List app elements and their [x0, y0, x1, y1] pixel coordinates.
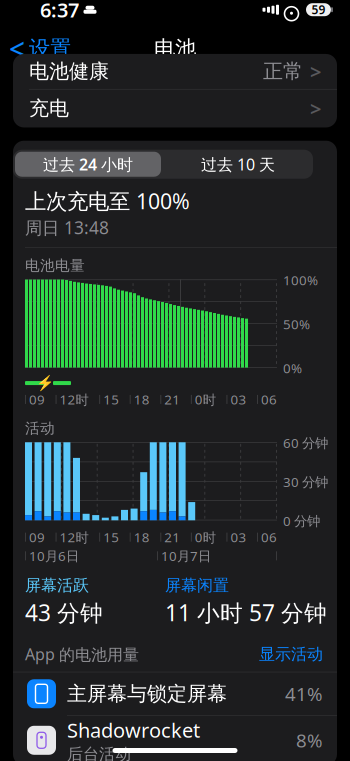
staticText: 18 [134, 391, 150, 408]
staticText: 主屏幕与锁定屏幕 [67, 681, 227, 706]
staticText: 21 [164, 391, 180, 408]
staticText: 15 [103, 391, 119, 408]
staticText: 0时 [195, 391, 216, 408]
button[interactable]: 过去 24 小时 [13, 150, 163, 179]
staticText: > [310, 95, 321, 122]
staticText: 电池 [154, 36, 196, 62]
staticText: 50% [283, 315, 310, 333]
staticText: 设置 [29, 36, 71, 62]
staticText: 过去 24 小时 [43, 154, 133, 175]
button[interactable]: 主屏幕与锁定屏幕 [13, 672, 337, 715]
staticText: 屏幕活跃 [25, 576, 89, 595]
staticText: 正常 [263, 59, 303, 84]
staticText: 18 [134, 528, 150, 546]
staticText: 06 [261, 528, 277, 546]
button[interactable]: 显示活动 [259, 644, 323, 664]
staticText: 21 [164, 528, 180, 546]
staticText: ⚡ [36, 375, 54, 391]
staticText: < [9, 30, 25, 67]
button[interactable]: < [0, 24, 71, 73]
staticText: 显示活动 [259, 644, 323, 664]
staticText: 0 分钟 [283, 512, 320, 530]
staticText: 43 分钟 [25, 597, 103, 627]
button[interactable]: 电池健康 [13, 54, 337, 89]
staticText: 41% [285, 681, 323, 706]
staticText: 12时 [60, 528, 89, 546]
staticText: 周日 13:48 [25, 216, 109, 239]
button[interactable]: 过去 10 天 [163, 150, 313, 179]
staticText: App 的电池用量 [25, 643, 139, 665]
staticText: 活动 [25, 419, 55, 437]
staticText: 03 [230, 528, 246, 546]
button[interactable]: Shadowrocket [13, 716, 337, 761]
staticText: 电池健康 [29, 59, 109, 84]
staticText: 09 [29, 528, 45, 546]
staticText: 8% [296, 728, 323, 753]
staticText: 6:37 [40, 0, 79, 23]
staticText: 12时 [60, 391, 89, 408]
staticText: 100% [283, 271, 318, 289]
staticText: 后台活动 [67, 744, 131, 761]
staticText: 10月6日 [29, 547, 79, 565]
staticText: 屏幕闲置 [165, 576, 229, 595]
staticText: 0% [283, 359, 302, 377]
staticText: 60 分钟 [283, 434, 328, 452]
staticText: 59 [311, 2, 325, 18]
staticText: 15 [103, 528, 119, 546]
staticText: 06 [261, 391, 277, 408]
staticText: > [310, 58, 321, 85]
staticText: Shadowrocket [67, 717, 200, 743]
staticText: 过去 10 天 [201, 154, 275, 175]
staticText: 30 分钟 [283, 473, 328, 491]
staticText: 09 [29, 391, 45, 408]
staticText: 11 小时 57 分钟 [165, 597, 327, 627]
staticText: 0时 [195, 528, 216, 546]
staticText: 电池电量 [25, 257, 85, 275]
button[interactable]: 充电 [13, 89, 337, 127]
staticText: 充电 [29, 96, 69, 121]
staticText: 03 [230, 391, 246, 408]
staticText: 10月7日 [161, 547, 211, 565]
staticText: 上次充电至 100% [25, 187, 190, 215]
